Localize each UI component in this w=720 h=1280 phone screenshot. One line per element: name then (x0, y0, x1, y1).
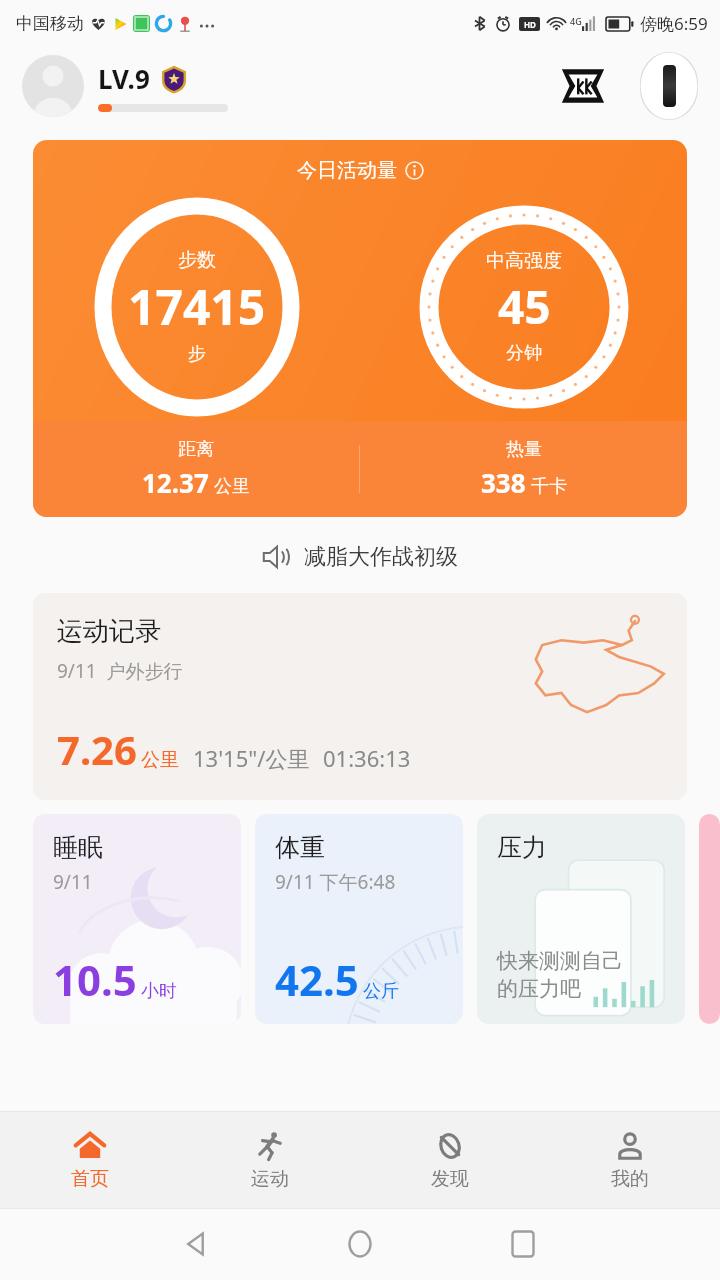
staticText: 7.26 (57, 722, 137, 776)
staticText: 9/11 (53, 869, 93, 895)
staticText: LV.9 (98, 61, 150, 96)
staticText: 9/11 下午6:48 (275, 869, 396, 895)
staticText: 小时 (141, 980, 177, 1003)
staticText: 12.37 (142, 465, 209, 500)
staticText: 千卡 (531, 475, 567, 498)
button[interactable] (22, 55, 84, 117)
staticText: 分钟 (506, 342, 542, 365)
button[interactable]: 睡眠 (33, 814, 241, 1024)
staticText: 13'15"/公里 (193, 743, 310, 773)
staticText: 01:36:13 (323, 743, 411, 773)
staticText: 中国移动 (16, 13, 84, 34)
staticText: 45 (498, 275, 551, 338)
staticText: 中高强度 (486, 249, 562, 273)
staticText: 体重 (275, 832, 325, 863)
button[interactable]: Back (115, 1208, 278, 1280)
staticText: 公斤 (363, 980, 399, 1003)
button[interactable]: 首页 (0, 1112, 180, 1208)
button[interactable]: 运动 (180, 1112, 360, 1208)
staticText: 减脂大作战初级 (304, 543, 458, 571)
button[interactable]: Recents (441, 1208, 604, 1280)
button[interactable]: My device (640, 52, 698, 120)
staticText: 338 (481, 465, 526, 500)
staticText: 压力 (497, 832, 547, 863)
staticText: 运动记录 (57, 615, 161, 648)
staticText: 的压力吧 (497, 976, 581, 1002)
staticText: 热量 (506, 438, 542, 461)
button[interactable]: 体重 (255, 814, 463, 1024)
button[interactable]: kk (556, 59, 610, 113)
button[interactable]: 运动记录 (33, 593, 687, 800)
button[interactable]: 减脂大作战初级 (0, 535, 720, 579)
staticText: 运动 (251, 1167, 289, 1191)
staticText: 我的 (611, 1167, 649, 1191)
staticText: 步 (188, 343, 206, 366)
staticText: 公里 (141, 748, 179, 772)
button[interactable]: 我的 (540, 1112, 720, 1208)
staticText: 距离 (178, 438, 214, 461)
staticText: 步数 (178, 248, 216, 272)
button[interactable]: 压力 (477, 814, 685, 1024)
button[interactable]: Home (278, 1208, 441, 1280)
button[interactable]: 发现 (360, 1112, 540, 1208)
staticText: 傍晚6:59 (640, 12, 708, 35)
staticText: 42.5 (275, 951, 359, 1008)
staticText: 17415 (128, 274, 266, 339)
button[interactable]: More (699, 814, 720, 1024)
staticText: 发现 (431, 1167, 469, 1191)
staticText: 公里 (214, 475, 250, 498)
staticText: 快来测测自己 (497, 948, 623, 974)
staticText: 首页 (71, 1167, 109, 1191)
staticText: 睡眠 (53, 832, 103, 863)
staticText: HD (524, 19, 536, 30)
button[interactable]: 今日活动量 (33, 140, 687, 517)
staticText: 9/11 户外步行 (57, 658, 183, 684)
staticText: 4G (570, 15, 582, 27)
staticText: 今日活动量 (297, 158, 397, 183)
staticText: 10.5 (53, 951, 137, 1008)
